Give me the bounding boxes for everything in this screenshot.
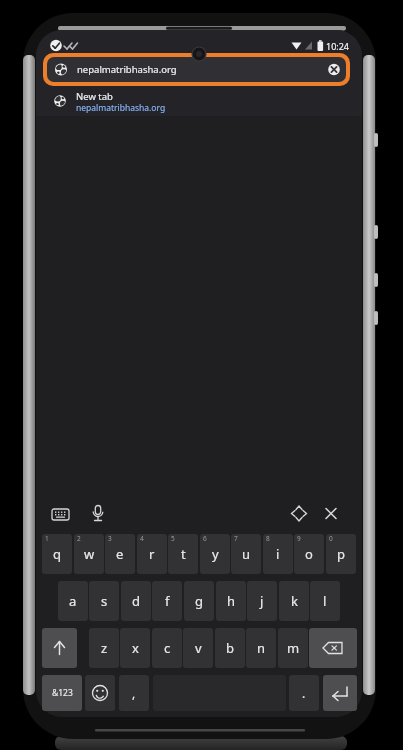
- button[interactable]: m: [278, 628, 308, 668]
- staticText: 3: [108, 534, 112, 543]
- button[interactable]: e: [105, 534, 135, 574]
- button[interactable]: i: [263, 534, 293, 574]
- staticText: o: [305, 545, 313, 563]
- button[interactable]: f: [152, 581, 182, 621]
- button[interactable]: nepalmatribhasha.org: [43, 53, 350, 86]
- button[interactable]: [42, 628, 77, 668]
- button[interactable]: [84, 502, 114, 526]
- staticText: 4: [140, 534, 144, 543]
- staticText: 2: [77, 534, 81, 543]
- staticText: p: [337, 545, 345, 563]
- staticText: h: [227, 592, 236, 610]
- staticText: f: [165, 592, 170, 610]
- button[interactable]: a: [58, 581, 88, 621]
- staticText: k: [291, 592, 298, 610]
- button[interactable]: x: [120, 628, 150, 668]
- button[interactable]: y: [200, 534, 230, 574]
- staticText: e: [116, 545, 124, 563]
- staticText: .: [302, 685, 306, 701]
- staticText: n: [257, 639, 266, 657]
- button[interactable]: .: [289, 675, 319, 711]
- staticText: 9: [297, 534, 301, 543]
- staticText: &123: [52, 687, 73, 699]
- button[interactable]: c: [152, 628, 182, 668]
- staticText: x: [132, 639, 139, 657]
- button[interactable]: ,: [119, 675, 149, 711]
- staticText: w: [84, 545, 95, 563]
- button[interactable]: [323, 675, 357, 711]
- button[interactable]: &123: [42, 675, 82, 711]
- staticText: 7: [234, 534, 238, 543]
- staticText: y: [212, 545, 219, 563]
- button[interactable]: [317, 502, 345, 526]
- staticText: q: [53, 545, 61, 563]
- button[interactable]: t: [168, 534, 198, 574]
- staticText: l: [323, 592, 327, 610]
- button[interactable]: [46, 502, 76, 526]
- staticText: New tab: [76, 90, 113, 103]
- button[interactable]: h: [216, 581, 246, 621]
- button[interactable]: [285, 502, 313, 526]
- staticText: d: [132, 592, 140, 610]
- staticText: 10:24: [326, 40, 350, 52]
- staticText: g: [195, 592, 203, 610]
- staticText: b: [226, 639, 234, 657]
- staticText: z: [101, 639, 108, 657]
- button[interactable]: r: [137, 534, 167, 574]
- staticText: 8: [266, 534, 270, 543]
- button[interactable]: k: [279, 581, 309, 621]
- staticText: m: [287, 639, 300, 657]
- staticText: a: [69, 592, 77, 610]
- staticText: j: [260, 592, 264, 610]
- button[interactable]: n: [246, 628, 276, 668]
- button[interactable]: d: [121, 581, 151, 621]
- staticText: 0: [329, 534, 333, 543]
- staticText: 5: [171, 534, 175, 543]
- button[interactable]: o: [294, 534, 324, 574]
- staticText: s: [101, 592, 108, 610]
- staticText: 6: [203, 534, 207, 543]
- staticText: 1: [45, 534, 49, 543]
- button[interactable]: [85, 675, 115, 711]
- button[interactable]: v: [183, 628, 213, 668]
- button[interactable]: b: [215, 628, 245, 668]
- staticText: v: [195, 639, 202, 657]
- staticText: c: [164, 639, 171, 657]
- staticText: i: [276, 545, 280, 563]
- button[interactable]: j: [247, 581, 277, 621]
- staticText: nepalmatribhasha.org: [77, 63, 177, 76]
- button[interactable]: [309, 628, 357, 668]
- button[interactable]: z: [89, 628, 119, 668]
- staticText: u: [242, 545, 251, 563]
- button[interactable]: l: [310, 581, 340, 621]
- button[interactable]: u: [231, 534, 261, 574]
- button[interactable]: q: [42, 534, 72, 574]
- staticText: nepalmatribhasha.org: [76, 102, 166, 114]
- button[interactable]: p: [326, 534, 356, 574]
- staticText: t: [181, 545, 186, 563]
- button[interactable]: New tab: [36, 88, 362, 116]
- staticText: ,: [132, 685, 136, 701]
- button[interactable]: s: [89, 581, 119, 621]
- button[interactable]: w: [74, 534, 104, 574]
- button[interactable]: g: [184, 581, 214, 621]
- staticText: r: [149, 545, 155, 563]
